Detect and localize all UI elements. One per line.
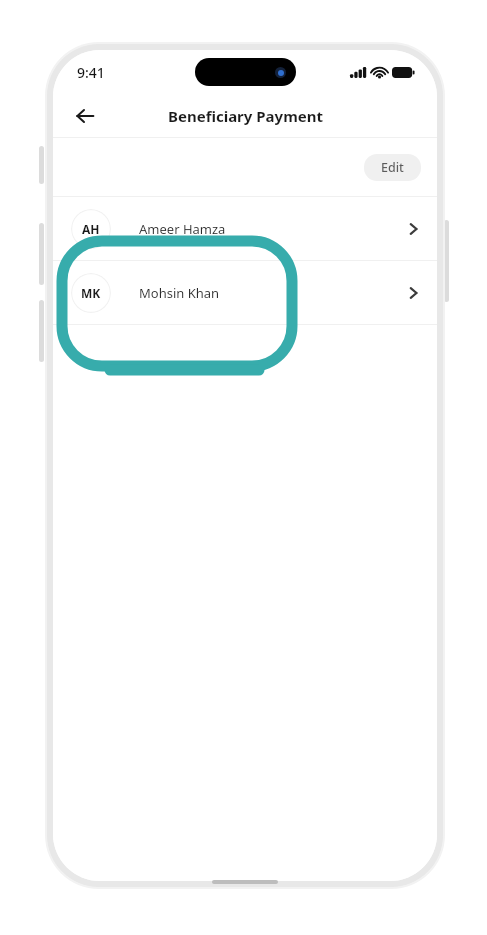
staticText: MK (81, 285, 101, 301)
staticText: 9:41 (77, 63, 105, 82)
staticText: Ameer Hamza (139, 220, 226, 238)
staticText: Mohsin Khan (139, 284, 220, 302)
staticText: Beneficiary Payment (168, 106, 323, 126)
button[interactable]: AH (53, 197, 437, 260)
button[interactable]: MK (53, 261, 437, 324)
button[interactable]: Back (65, 96, 105, 136)
staticText: AH (82, 221, 100, 237)
staticText: Edit (381, 159, 404, 176)
button[interactable]: Edit (364, 154, 421, 181)
